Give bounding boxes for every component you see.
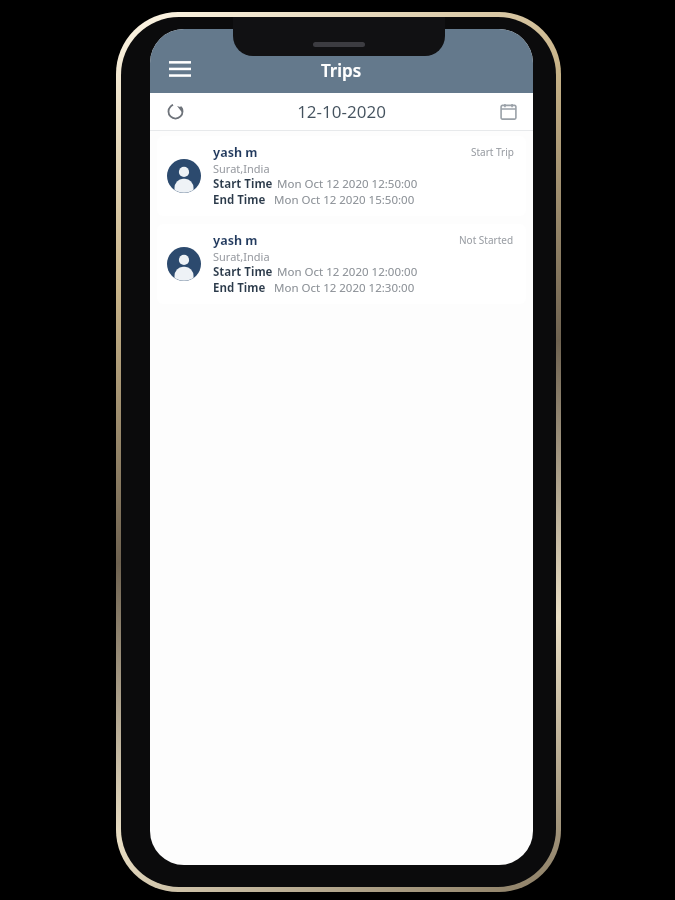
staticText: Surat,India	[213, 249, 270, 264]
staticText: End Time	[213, 280, 266, 296]
staticText: Surat,India	[213, 161, 270, 176]
staticText: Start Time	[213, 176, 273, 192]
staticText: 12-10-2020	[297, 100, 386, 123]
staticText: Trips	[321, 59, 362, 82]
button[interactable]: Start Trip	[469, 144, 516, 160]
staticText: End Time	[213, 192, 266, 208]
staticText: Mon Oct 12 2020 15:50:00	[274, 192, 415, 208]
staticText: yash m	[213, 232, 258, 249]
button[interactable]: Open navigation menu	[158, 47, 202, 91]
button[interactable]: Pick date	[489, 93, 527, 130]
button[interactable]: yash m	[157, 224, 526, 304]
staticText: Start Time	[213, 264, 273, 280]
staticText: Mon Oct 12 2020 12:30:00	[274, 280, 415, 296]
staticText: Start Trip	[471, 145, 514, 159]
button[interactable]: yash m	[157, 136, 526, 216]
staticText: Mon Oct 12 2020 12:50:00	[277, 176, 418, 192]
staticText: yash m	[213, 144, 258, 161]
button[interactable]: Refresh	[156, 93, 194, 130]
staticText: Not Started	[459, 233, 514, 247]
staticText: Mon Oct 12 2020 12:00:00	[277, 264, 418, 280]
button[interactable]: Not Started	[457, 232, 516, 248]
